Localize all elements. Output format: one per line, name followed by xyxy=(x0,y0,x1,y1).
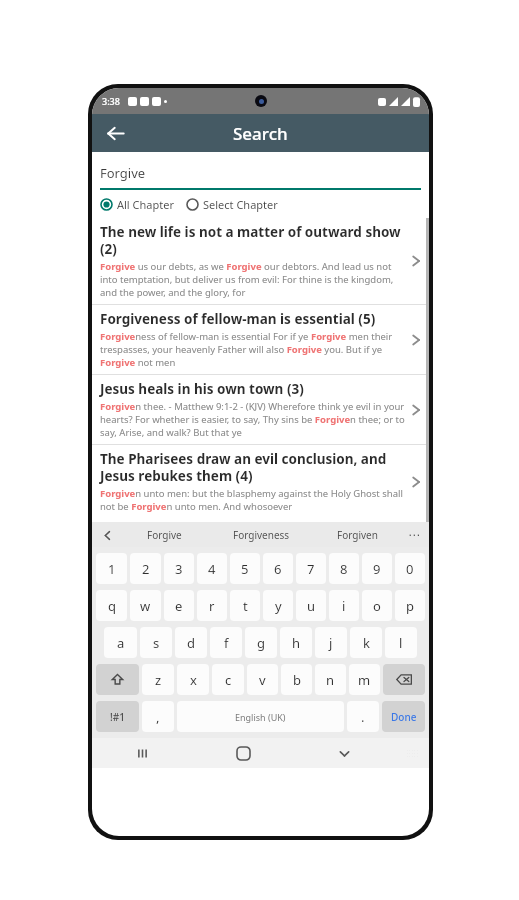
button[interactable]: 8 xyxy=(329,553,359,584)
staticText: Jesus heals in his own town (3) xyxy=(100,380,304,398)
button[interactable]: 0 xyxy=(395,553,425,584)
staticText: f xyxy=(224,634,229,652)
staticText: i xyxy=(342,597,346,615)
button[interactable]: z xyxy=(142,664,174,695)
button[interactable]: g xyxy=(245,627,277,658)
button[interactable]: Home xyxy=(193,738,294,768)
button[interactable]: x xyxy=(177,664,209,695)
button[interactable]: All Chapter xyxy=(100,197,180,212)
button[interactable]: , xyxy=(142,701,174,732)
staticText: y xyxy=(275,597,282,615)
button[interactable]: Recents xyxy=(92,738,193,768)
button[interactable]: j xyxy=(315,627,347,658)
staticText: Forgive xyxy=(100,164,146,182)
button[interactable]: 9 xyxy=(362,553,392,584)
staticText: ⋯ xyxy=(408,528,420,542)
button[interactable]: 4 xyxy=(197,553,227,584)
button[interactable]: The new life is not a matter of outward … xyxy=(92,218,429,304)
button[interactable]: f xyxy=(210,627,242,658)
staticText: p xyxy=(406,597,414,615)
button[interactable]: 6 xyxy=(263,553,293,584)
button[interactable]: t xyxy=(230,590,260,621)
staticText: 2 xyxy=(142,560,150,578)
button[interactable]: a xyxy=(104,627,137,658)
button[interactable]: r xyxy=(197,590,227,621)
button[interactable]: 1 xyxy=(96,553,127,584)
button[interactable]: h xyxy=(280,627,312,658)
staticText: Search xyxy=(233,122,288,145)
staticText: o xyxy=(373,597,381,615)
button[interactable]: 5 xyxy=(230,553,260,584)
button[interactable]: Shift xyxy=(96,664,139,695)
staticText: , xyxy=(156,708,160,726)
button[interactable]: k xyxy=(350,627,382,658)
button[interactable]: c xyxy=(212,664,244,695)
button[interactable]: English (UK) xyxy=(177,701,344,732)
button[interactable]: w xyxy=(130,590,161,621)
button[interactable]: Jesus heals in his own town (3) xyxy=(92,375,429,444)
button[interactable]: 3 xyxy=(164,553,194,584)
button[interactable]: Forgiveness of fellow-man is essential (… xyxy=(92,305,429,374)
button[interactable]: s xyxy=(140,627,172,658)
staticText: z xyxy=(155,671,162,689)
staticText: Forgiven unto men: but the blasphemy aga… xyxy=(100,487,405,513)
button[interactable]: Back xyxy=(98,116,132,150)
staticText: 6 xyxy=(274,560,282,578)
button[interactable]: 2 xyxy=(130,553,161,584)
button[interactable]: Done xyxy=(382,701,425,732)
button[interactable]: Hide keyboard xyxy=(294,738,395,768)
button[interactable]: Backspace xyxy=(383,664,425,695)
button[interactable]: m xyxy=(349,664,380,695)
button[interactable]: Forgive xyxy=(116,528,213,542)
staticText: t xyxy=(243,597,248,615)
staticText: d xyxy=(187,634,195,652)
button[interactable]: Forgiven xyxy=(309,528,405,542)
button[interactable]: Forgiveness xyxy=(213,528,309,542)
button[interactable]: v xyxy=(247,664,278,695)
button[interactable]: b xyxy=(281,664,312,695)
button[interactable]: 7 xyxy=(296,553,326,584)
staticText: Forgiveness xyxy=(233,528,290,542)
staticText: h xyxy=(292,634,301,652)
button[interactable]: i xyxy=(329,590,359,621)
button[interactable]: The Pharisees draw an evil conclusion, a… xyxy=(92,445,429,518)
staticText: s xyxy=(153,634,160,652)
staticText: e xyxy=(175,597,183,615)
staticText: 7 xyxy=(307,560,315,578)
staticText: 4 xyxy=(208,560,216,578)
button[interactable]: o xyxy=(362,590,392,621)
button[interactable]: y xyxy=(263,590,293,621)
staticText: k xyxy=(363,634,370,652)
button[interactable]: u xyxy=(296,590,326,621)
staticText: 9 xyxy=(373,560,381,578)
button[interactable]: Previous xyxy=(98,526,116,544)
staticText: u xyxy=(307,597,316,615)
staticText: c xyxy=(225,671,232,689)
staticText: b xyxy=(293,671,301,689)
staticText: l xyxy=(399,634,403,652)
staticText: The new life is not a matter of outward … xyxy=(100,223,405,258)
button[interactable]: l xyxy=(385,627,417,658)
staticText: a xyxy=(117,634,125,652)
button[interactable]: d xyxy=(175,627,207,658)
button[interactable]: More xyxy=(405,526,423,544)
staticText: g xyxy=(257,634,265,652)
staticText: w xyxy=(140,597,151,615)
button[interactable]: . xyxy=(347,701,379,732)
staticText: Forgiveness of fellow-man is essential (… xyxy=(100,310,376,328)
staticText: Forgiveness of fellow-man is essential F… xyxy=(100,330,405,369)
staticText: Forgiven thee. - Matthew 9:1-2 - (KJV) W… xyxy=(100,400,405,439)
staticText: Forgive us our debts, as we Forgive our … xyxy=(100,260,405,299)
button[interactable]: !#1 xyxy=(96,701,139,732)
button[interactable]: p xyxy=(395,590,425,621)
staticText: Done xyxy=(391,710,417,724)
staticText: q xyxy=(108,597,116,615)
staticText: Forgive xyxy=(147,528,182,542)
button[interactable]: Select Chapter xyxy=(186,197,278,212)
staticText: 3 xyxy=(175,560,183,578)
staticText: 5 xyxy=(241,560,249,578)
button[interactable]: n xyxy=(315,664,346,695)
button[interactable]: e xyxy=(164,590,194,621)
button[interactable]: q xyxy=(96,590,127,621)
